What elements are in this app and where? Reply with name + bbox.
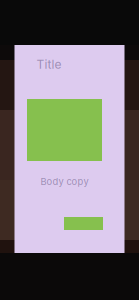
staticText: Body copy xyxy=(40,176,88,187)
staticText: Title xyxy=(36,57,61,71)
